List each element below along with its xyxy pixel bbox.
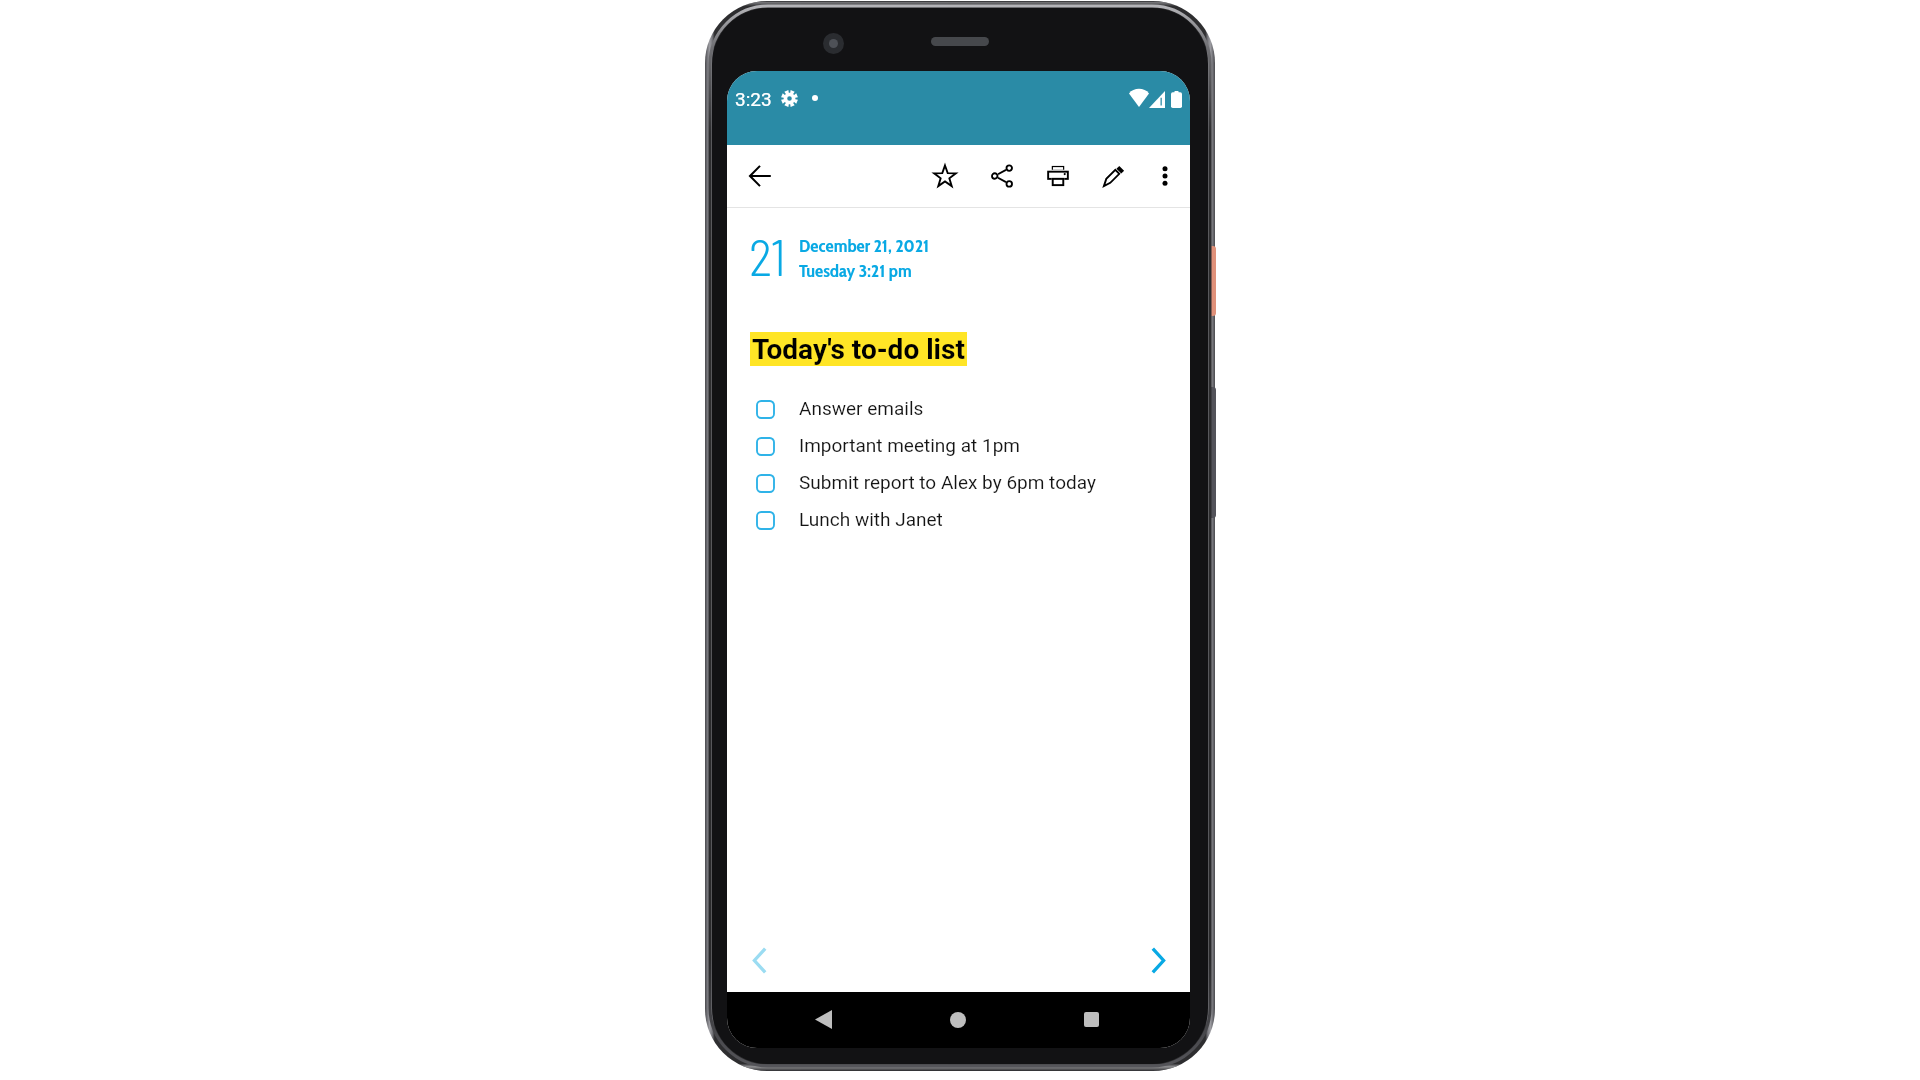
button[interactable]: More options [1141,152,1189,200]
staticText: 3:23 [735,88,772,110]
button[interactable]: Next day [1138,940,1178,980]
staticText: December 21, 2021 [799,234,930,256]
button[interactable]: Share [978,152,1026,200]
button[interactable]: Home [936,998,979,1041]
button[interactable]: Edit [1090,152,1138,200]
button[interactable]: Previous day [739,940,779,980]
staticText: Tuesday 3:21 pm [799,259,912,281]
staticText: Important meeting at 1pm [799,434,1021,456]
staticText: Submit report to Alex by 6pm today [799,471,1096,493]
button[interactable]: Add to favourites [921,152,969,200]
staticText: Lunch with Janet [799,508,943,530]
staticText: Today's to-do list [752,333,965,366]
button[interactable]: Back [802,998,845,1041]
button[interactable]: Important meeting at 1pm [727,428,1190,466]
button[interactable]: Recent apps [1070,998,1113,1041]
button[interactable]: Submit report to Alex by 6pm today [727,465,1190,503]
staticText: Answer emails [799,397,924,419]
button[interactable]: Print [1034,152,1082,200]
button[interactable]: Answer emails [727,391,1190,429]
button[interactable]: Lunch with Janet [727,502,1190,540]
button[interactable]: Back [736,152,784,200]
staticText: 21 [749,226,786,286]
